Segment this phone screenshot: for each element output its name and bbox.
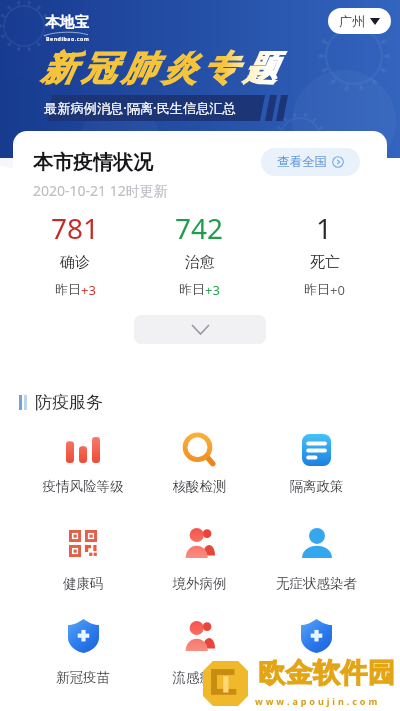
staticText: 昨日 (55, 281, 81, 297)
staticText (258, 669, 375, 687)
staticText: +3 (205, 281, 220, 299)
button[interactable]: 境外病例 (141, 526, 258, 560)
staticText: 本市疫情状况 (33, 150, 153, 175)
staticText: w w w . a p o u j i n . c o m (255, 695, 378, 707)
button[interactable]: 健康码 (25, 526, 141, 560)
button[interactable]: 疫情风险等级 (25, 433, 141, 467)
button[interactable]: 展开更多 (134, 315, 266, 344)
staticText: 死亡 (310, 253, 340, 272)
staticText: 防疫服务 (35, 392, 103, 413)
staticText: 781 (51, 209, 100, 247)
button[interactable]: 无症状感染者 (258, 526, 375, 560)
staticText: 查看全国 (277, 154, 327, 170)
staticText: 核酸检测 (141, 478, 258, 495)
staticText: 昨日 (304, 281, 330, 297)
staticText: 最新病例消息·隔离·民生信息汇总 (44, 99, 236, 117)
button[interactable]: 广州 (328, 8, 391, 34)
button[interactable]: 隔离政策 (258, 433, 375, 467)
staticText: Bendibao.com (46, 35, 90, 42)
staticText: 境外病例 (141, 575, 258, 592)
button[interactable]: 新冠疫苗 (25, 619, 141, 653)
button[interactable]: 核酸检测 (141, 433, 258, 467)
staticText: 2020-10-21 12时更新 (33, 181, 168, 200)
staticText: 流感疫苗 (141, 669, 258, 686)
staticText: 本地宝 (45, 13, 90, 31)
staticText: 健康码 (25, 575, 141, 592)
staticText: 昨日 (179, 281, 205, 297)
staticText: 742 (175, 209, 224, 247)
staticText: 新冠肺炎专题 (41, 47, 284, 90)
staticText: 无症状感染者 (258, 575, 375, 592)
staticText: 新冠疫苗 (25, 669, 141, 686)
staticText: 广州 (339, 13, 365, 29)
button[interactable]: 流感疫苗 (141, 619, 258, 653)
staticText: 确诊 (60, 253, 90, 272)
staticText: +3 (81, 281, 96, 299)
staticText: 欧金软件园 (258, 656, 396, 690)
staticText: 1 (316, 209, 333, 247)
staticText: 治愈 (185, 253, 215, 272)
button[interactable]: 查看全国 (261, 148, 360, 176)
staticText: +0 (330, 281, 345, 299)
button[interactable] (258, 619, 375, 653)
staticText: 疫情风险等级 (25, 478, 141, 495)
staticText: 隔离政策 (258, 478, 375, 495)
